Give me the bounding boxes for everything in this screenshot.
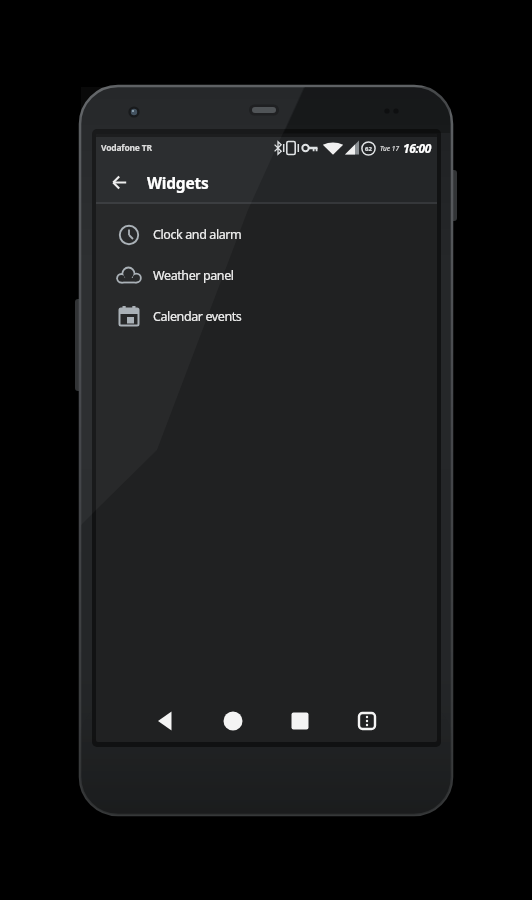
- button[interactable]: [278, 701, 322, 741]
- staticText: Calendar events: [153, 308, 242, 325]
- button[interactable]: [144, 701, 188, 741]
- button[interactable]: [211, 701, 255, 741]
- staticText: 62: [365, 145, 372, 153]
- button[interactable]: Weather panel: [96, 255, 437, 296]
- staticText: 16:00: [403, 140, 431, 156]
- button[interactable]: Calendar events: [96, 296, 437, 337]
- button[interactable]: Clock and alarm: [96, 214, 437, 255]
- staticText: Tue 17: [380, 144, 400, 153]
- button[interactable]: [104, 165, 136, 197]
- staticText: Widgets: [147, 172, 209, 193]
- staticText: Weather panel: [153, 267, 234, 284]
- button[interactable]: [345, 701, 389, 741]
- staticText: Vodafone TR: [101, 142, 152, 154]
- staticText: Clock and alarm: [153, 226, 242, 243]
